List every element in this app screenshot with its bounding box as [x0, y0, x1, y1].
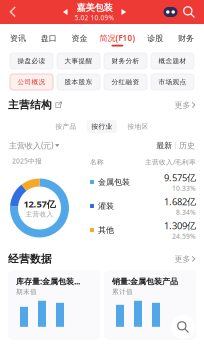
button[interactable]: Assistant	[163, 6, 178, 18]
button[interactable]: Search	[178, 1, 200, 23]
button[interactable]: 简况(F10)	[96, 25, 138, 46]
staticText: 历史	[179, 141, 195, 150]
staticText: 金属包装	[98, 177, 130, 187]
staticText: 1.682亿	[164, 195, 196, 208]
staticText: 按行业	[91, 122, 112, 131]
staticText: 资讯	[10, 33, 26, 43]
staticText: 12.57亿	[23, 198, 55, 210]
button[interactable]: 财务分析	[104, 53, 147, 69]
button[interactable]: Next stock	[120, 8, 126, 15]
staticText: 主营收入/毛利率	[145, 158, 196, 166]
staticText: 9.575亿	[164, 171, 196, 184]
button[interactable]: 公司概况	[10, 74, 53, 90]
staticText: 名称	[90, 158, 104, 166]
button[interactable]: 最新	[156, 141, 172, 150]
staticText: 操盘必读	[17, 57, 45, 65]
button[interactable]: 财务	[172, 25, 200, 46]
button[interactable]: 市场观点	[151, 74, 194, 90]
staticText: 公司概况	[17, 78, 45, 86]
staticText: 期末值	[16, 288, 37, 296]
staticText: 10.33%	[172, 184, 196, 193]
button[interactable]: 更多	[174, 254, 196, 264]
button[interactable]: 按地区	[123, 120, 153, 133]
staticText: 灌装	[98, 201, 114, 211]
staticText: 2025中报	[12, 157, 42, 165]
staticText: 主营收入	[25, 210, 53, 218]
button[interactable]: 资讯	[4, 25, 32, 46]
staticText: 最新	[156, 141, 172, 150]
staticText: 简况(F10)	[99, 33, 135, 43]
button[interactable]: 历史	[179, 141, 195, 150]
button[interactable]: 大事提醒	[57, 53, 100, 69]
staticText: 盘口	[41, 33, 57, 43]
staticText: 5.02 10.09%	[74, 13, 114, 22]
button[interactable]: 资金	[66, 25, 94, 46]
staticText: 财务	[178, 33, 194, 43]
staticText: 8.34%	[176, 208, 196, 217]
staticText: 主营结构	[8, 98, 52, 111]
staticText: 诊股	[147, 33, 163, 43]
button[interactable]: 销量:金属包装产品	[104, 270, 196, 340]
staticText: 嘉美包装	[76, 2, 112, 13]
button[interactable]: 概念题材	[151, 53, 194, 69]
button[interactable]: 诊股	[141, 25, 169, 46]
staticText: 销量:金属包装产品	[112, 276, 178, 287]
button[interactable]: 按产品	[51, 120, 81, 133]
staticText: 其他	[98, 225, 114, 235]
staticText: 经营数据	[8, 252, 52, 265]
staticText: 累计值	[112, 288, 133, 296]
staticText: 主营收入(元)	[9, 140, 53, 151]
button[interactable]: 操盘必读	[10, 53, 53, 69]
button[interactable]: Previous stock	[62, 8, 68, 15]
button[interactable]: 更多	[174, 100, 196, 110]
staticText: 按地区	[127, 122, 148, 131]
staticText: 概念题材	[158, 57, 186, 65]
staticText: 财务分析	[111, 57, 139, 65]
staticText: 分红融资	[111, 78, 139, 86]
button[interactable]: Search	[171, 315, 195, 339]
button[interactable]: 主营收入(元)	[9, 140, 60, 151]
staticText: 市场观点	[158, 78, 186, 86]
button[interactable]: 股本股东	[57, 74, 100, 90]
staticText: 资金	[72, 33, 88, 43]
staticText: 24.59%	[172, 232, 196, 241]
button[interactable]: 库存量:金属包装...	[8, 270, 100, 340]
button[interactable]: 按行业	[87, 120, 117, 133]
staticText: 1.309亿	[164, 219, 196, 232]
staticText: 按产品	[55, 122, 76, 131]
button[interactable]: Back	[0, 0, 26, 24]
staticText: 大事提醒	[64, 57, 92, 65]
staticText: 库存量:金属包装...	[16, 276, 80, 287]
staticText: 股本股东	[64, 78, 92, 86]
button[interactable]: 分红融资	[104, 74, 147, 90]
button[interactable]: 盘口	[35, 25, 63, 46]
staticText: 更多	[174, 100, 190, 110]
staticText: 更多	[174, 254, 190, 264]
